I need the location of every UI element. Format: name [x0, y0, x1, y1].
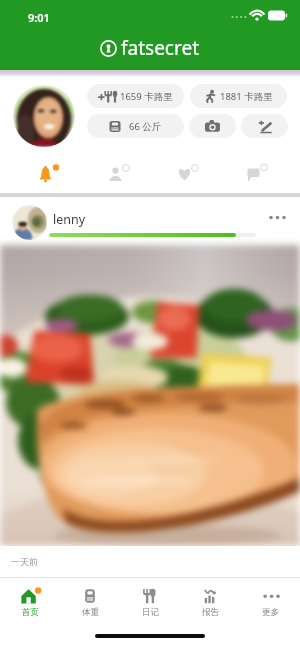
button[interactable]: 更多 [240, 578, 300, 622]
button[interactable]: 首页 [0, 578, 60, 622]
button[interactable]: Friends [101, 152, 141, 193]
staticText: lenny [53, 211, 86, 228]
button[interactable]: More options [264, 205, 290, 229]
staticText: 1881 卡路里 [220, 90, 273, 103]
staticText: 首页 [22, 607, 39, 618]
staticText: 更多 [262, 607, 279, 618]
button[interactable]: Comments [239, 152, 279, 193]
staticText: 66 公斤 [129, 120, 162, 133]
button[interactable]: 报告 [180, 578, 240, 622]
button[interactable]: Profile [13, 85, 75, 147]
button[interactable]: 日记 [120, 578, 180, 622]
staticText: 一天前 [11, 556, 38, 567]
staticText: 1659 卡路里 [120, 90, 173, 103]
staticText: 日记 [142, 607, 159, 618]
button[interactable]: 1881 卡路里 [190, 84, 287, 108]
button[interactable]: 66 公斤 [87, 114, 184, 138]
button[interactable]: lenny profile [12, 205, 47, 240]
button[interactable] [0, 245, 300, 546]
button[interactable]: 体重 [60, 578, 120, 622]
button[interactable]: 1659 卡路里 [87, 84, 184, 108]
button[interactable]: Edit [241, 114, 288, 138]
button[interactable]: Notifications [31, 152, 71, 193]
staticText: 体重 [82, 607, 99, 618]
staticText: 9:01 [28, 10, 50, 25]
staticText: fatsecret [121, 35, 200, 61]
button[interactable]: Take photo [189, 114, 236, 138]
staticText: 报告 [202, 607, 219, 618]
button[interactable]: Likes [170, 152, 210, 193]
